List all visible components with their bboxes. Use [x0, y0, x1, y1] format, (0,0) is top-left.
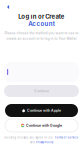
button[interactable]: Continue with Apple — [5, 104, 78, 117]
staticText: Privacy Policy — [36, 141, 53, 144]
staticText: Terms of Service — [55, 136, 79, 139]
staticText: create an account or to log in to Your W… — [6, 37, 76, 40]
staticText: Continue with Apple — [27, 108, 61, 113]
staticText: Continue with Google — [26, 123, 62, 128]
staticText: Continue — [34, 89, 49, 93]
button[interactable]: Continue — [4, 85, 79, 97]
staticText: By using this app you agree to our — [4, 136, 53, 139]
staticText: Account — [28, 20, 55, 27]
staticText: Log in or Create — [18, 13, 65, 20]
staticText: Please choose the method you want to use… — [4, 31, 78, 35]
button[interactable]: Privacy Policy — [36, 141, 53, 144]
button[interactable]: Terms of Service — [55, 136, 79, 139]
staticText: and — [30, 141, 35, 144]
button[interactable]: Continue with Google — [5, 119, 78, 132]
button[interactable]: Back — [2, 0, 13, 13]
